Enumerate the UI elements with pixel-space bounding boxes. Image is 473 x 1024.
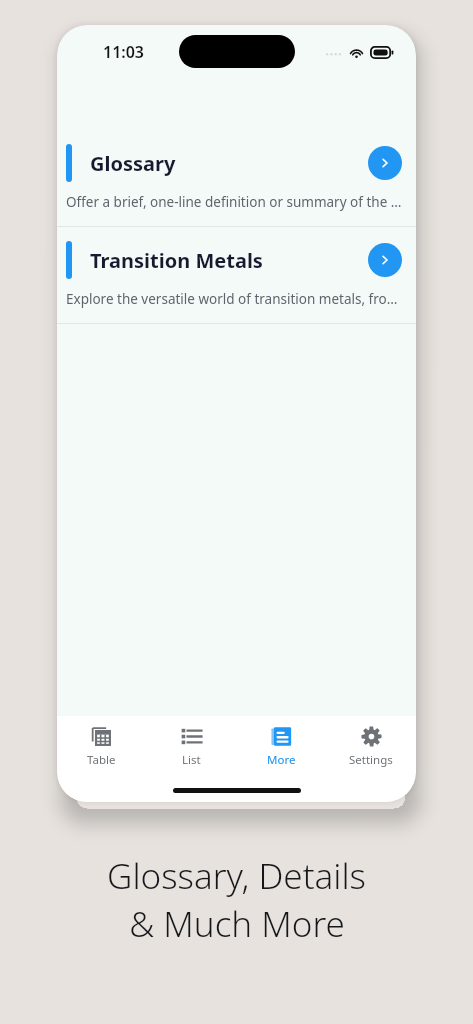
button[interactable]: Open Transition Metals (368, 243, 402, 277)
button[interactable]: Settings (326, 716, 416, 778)
staticText: 11:03 (103, 41, 145, 63)
staticText: More (267, 752, 296, 768)
button[interactable]: Transition Metals (57, 227, 416, 323)
staticText: List (182, 752, 201, 768)
staticText: Offer a brief, one-line definition or su… (66, 193, 402, 211)
button[interactable]: Glossary (57, 130, 416, 226)
staticText: Settings (349, 752, 393, 768)
button[interactable]: List (146, 716, 236, 778)
staticText: Glossary (90, 150, 368, 177)
button[interactable]: Table (57, 716, 146, 778)
staticText: Explore the versatile world of transitio… (66, 290, 402, 308)
staticText: Glossary, Details (107, 852, 366, 900)
staticText: Transition Metals (90, 247, 368, 274)
staticText: & Much More (129, 900, 345, 948)
button[interactable]: More (236, 716, 326, 778)
staticText: Table (87, 752, 116, 768)
button[interactable]: Open Glossary (368, 146, 402, 180)
